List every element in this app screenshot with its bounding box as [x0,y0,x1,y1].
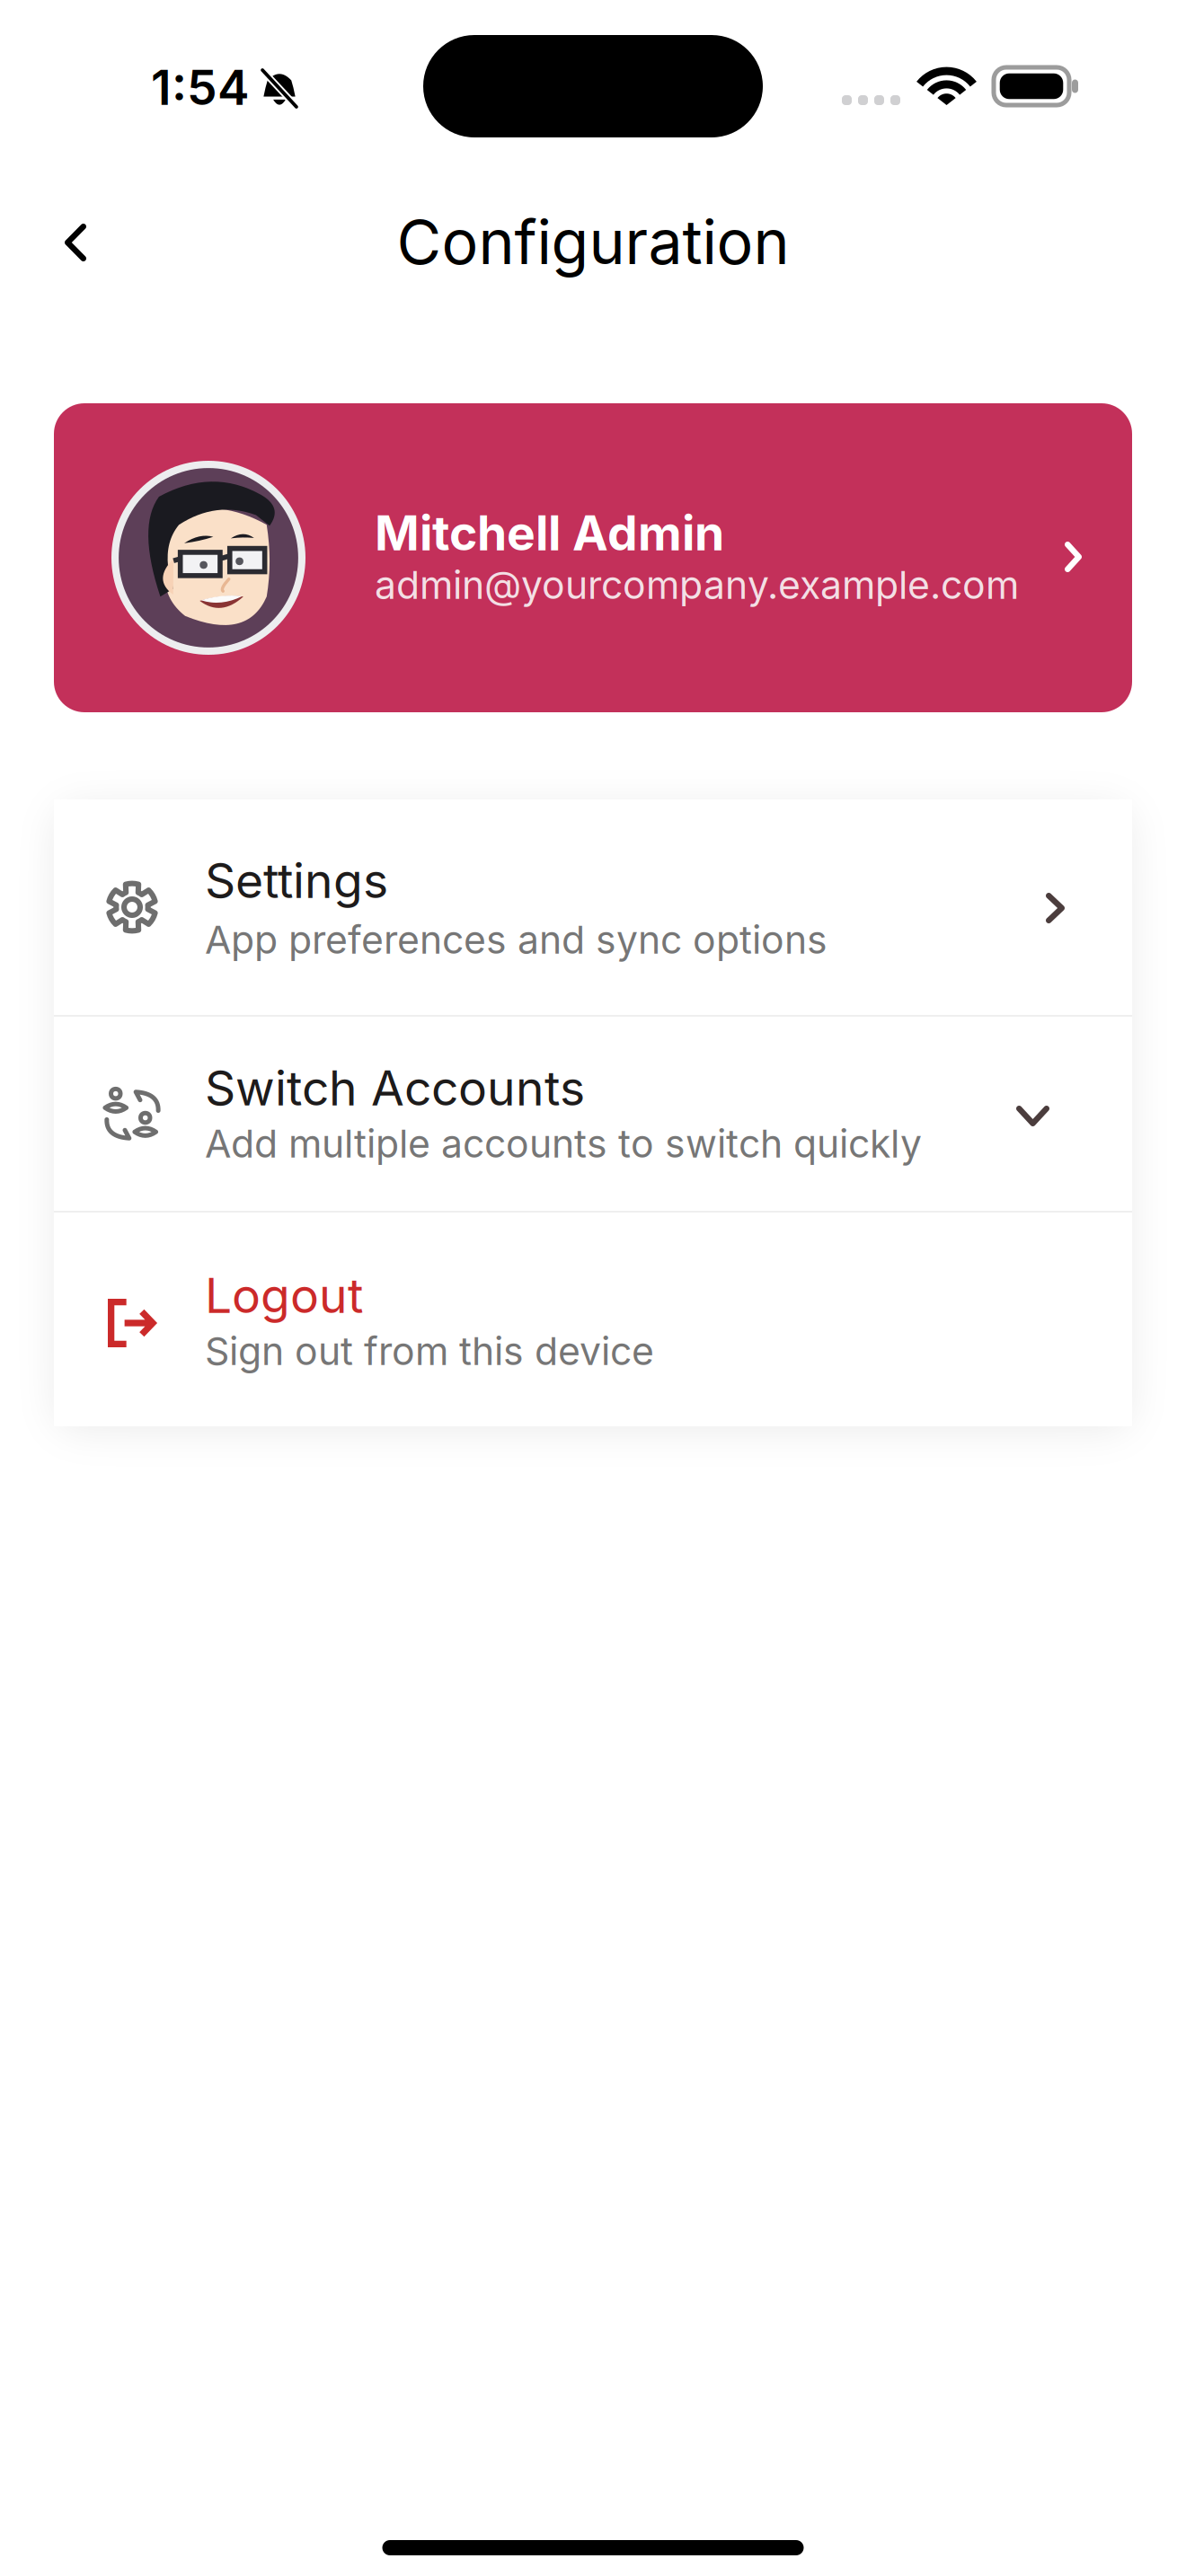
staticText: App preferences and sync options [205,917,828,963]
button[interactable]: Back [26,193,125,292]
staticText: 1:54 [151,58,250,116]
staticText: Configuration [397,205,789,279]
button[interactable]: Logout [54,1213,1132,1426]
staticText: Mitchell Admin [375,504,724,562]
staticText: admin@yourcompany.example.com [375,562,1019,608]
staticText: Add multiple accounts to switch quickly [205,1120,922,1167]
button[interactable]: Mitchell Admin [54,403,1132,712]
staticText: Logout [205,1266,363,1324]
staticText: Settings [205,851,388,909]
staticText: Switch Accounts [205,1059,585,1117]
button[interactable]: Switch Accounts [54,1017,1132,1211]
staticText: Sign out from this device [205,1328,654,1374]
button[interactable]: Settings [54,799,1132,1015]
